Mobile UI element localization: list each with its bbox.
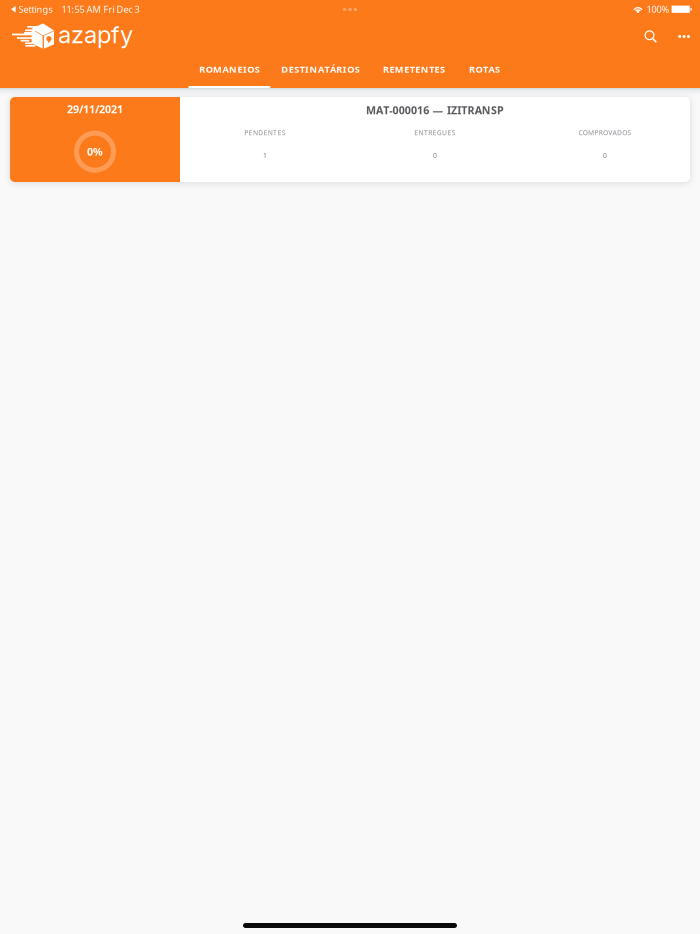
staticText: Fri Dec 3 [104,3,140,15]
button[interactable]: Search [635,21,669,52]
staticText: REMETENTES [383,63,445,75]
staticText: 0 [603,151,607,160]
staticText: 1 [263,151,267,160]
staticText: 0% [87,145,103,159]
button[interactable]: ROMANEIOS [188,56,270,88]
staticText: ROTAS [469,63,500,75]
staticText: 0 [433,151,437,160]
button[interactable]: 29/11/2021 [10,97,690,182]
button[interactable]: More options [669,26,699,47]
button[interactable]: ROTAS [457,56,511,88]
staticText: COMPROVADOS [578,128,631,137]
staticText: ENTREGUES [414,128,456,137]
button[interactable]: DESTINATÁRIOS [270,56,370,88]
staticText: MAT-000016 — IZITRANSP [366,103,504,117]
staticText: 11:55 AM [62,3,101,15]
staticText: PENDENTES [244,128,286,137]
staticText: 100% [647,3,670,15]
button[interactable]: REMETENTES [370,56,457,88]
staticText: ROMANEIOS [199,63,260,75]
staticText: Settings [19,3,53,15]
staticText: azapfy [58,20,133,49]
staticText: 29/11/2021 [67,102,123,116]
staticText: DESTINATÁRIOS [281,63,360,75]
